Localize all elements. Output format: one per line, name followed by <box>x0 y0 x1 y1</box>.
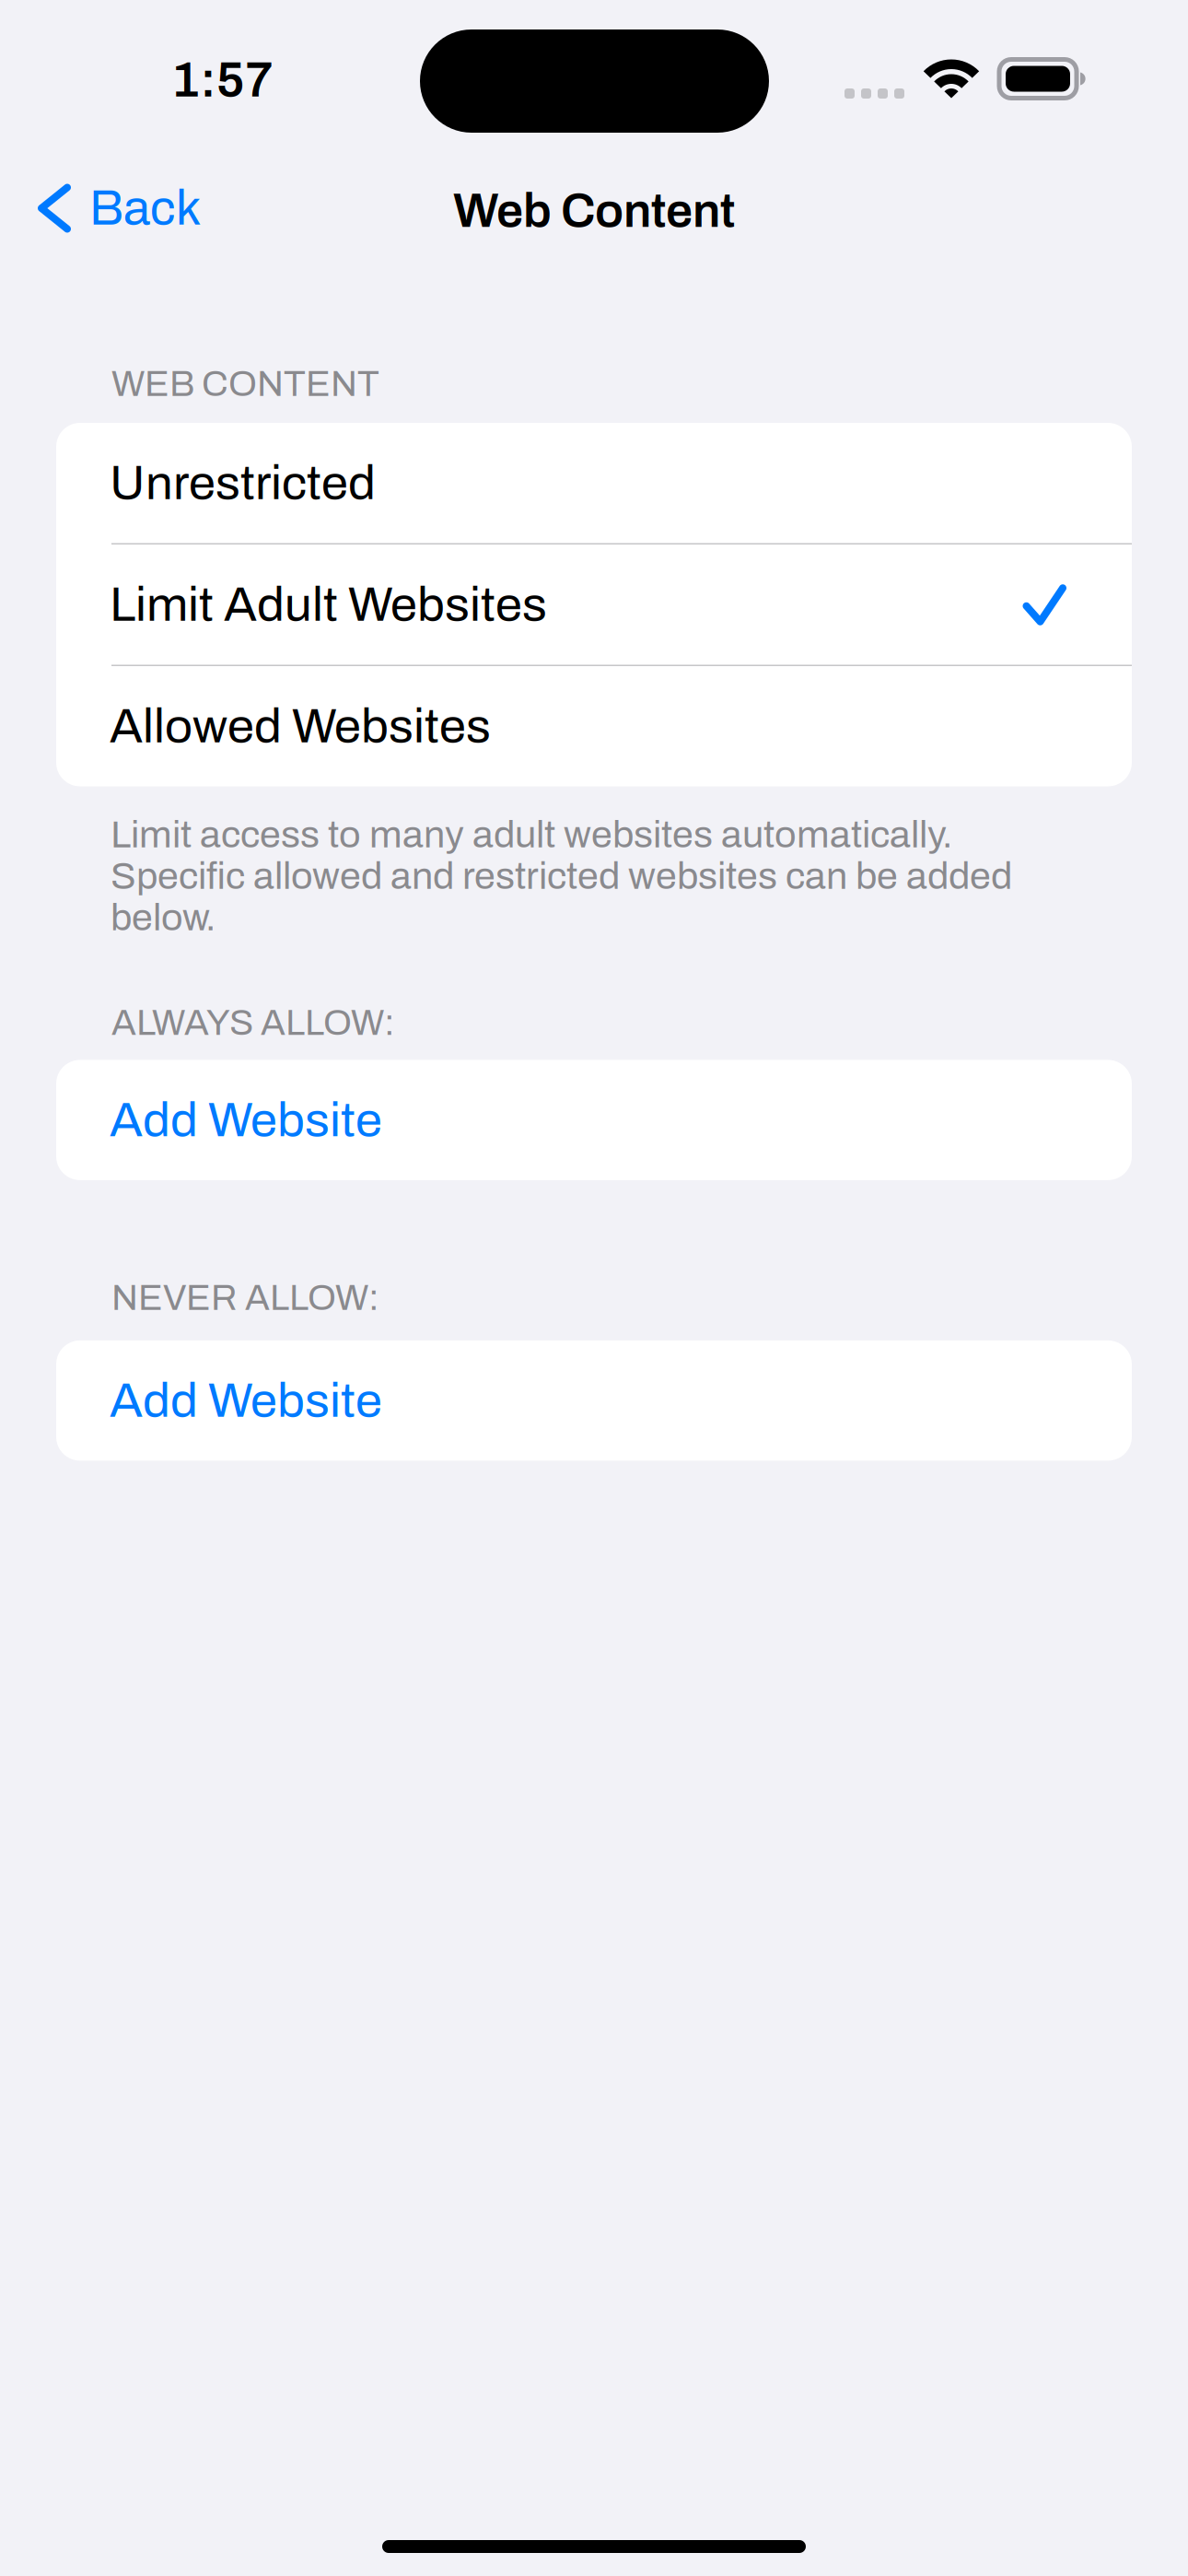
button[interactable]: Add Website <box>56 1060 1132 1180</box>
staticText: WEB CONTENT <box>111 364 379 404</box>
staticText: Add Website <box>110 1094 382 1146</box>
staticText: Back <box>89 181 201 235</box>
staticText: Allowed Websites <box>110 700 491 753</box>
staticText: ALWAYS ALLOW: <box>111 1003 395 1042</box>
staticText: NEVER ALLOW: <box>111 1278 379 1317</box>
button[interactable]: Unrestricted <box>56 423 1132 543</box>
button[interactable]: Back <box>0 163 223 253</box>
staticText: Limit access to many adult websites auto… <box>111 814 1012 938</box>
staticText: Limit Adult Websites <box>110 578 547 631</box>
staticText: Add Website <box>110 1374 382 1427</box>
button[interactable]: Limit Adult Websites <box>56 544 1132 665</box>
staticText: 1:57 <box>171 53 274 107</box>
staticText: Unrestricted <box>110 457 376 509</box>
button[interactable]: Allowed Websites <box>56 666 1132 786</box>
staticText: Web Content <box>453 185 735 237</box>
button[interactable]: Add Website <box>56 1340 1132 1461</box>
